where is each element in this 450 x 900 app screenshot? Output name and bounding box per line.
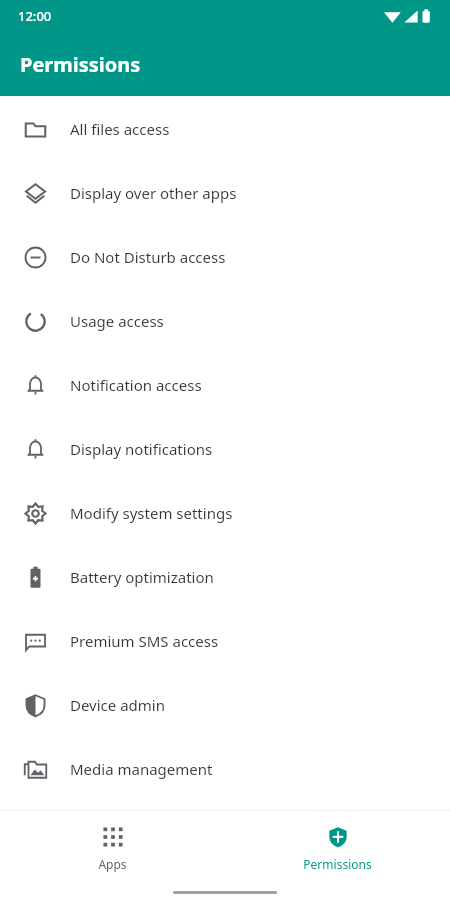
button[interactable]: Permissions	[225, 811, 450, 885]
button[interactable]: Premium SMS access	[0, 609, 450, 673]
button[interactable]: Display over other apps	[0, 161, 450, 225]
staticText: Display over other apps	[70, 183, 237, 203]
staticText: Premium SMS access	[70, 631, 219, 651]
staticText: Notification access	[70, 375, 202, 395]
staticText: Media management	[70, 759, 213, 779]
staticText: Modify system settings	[70, 503, 233, 523]
button[interactable]: Apps	[0, 811, 225, 885]
staticText: Battery optimization	[70, 567, 214, 587]
staticText: All files access	[70, 119, 170, 139]
staticText: Permissions	[303, 856, 372, 872]
staticText: Usage access	[70, 311, 164, 331]
button[interactable]: All files access	[0, 97, 450, 161]
button[interactable]: Modify system settings	[0, 481, 450, 545]
staticText: Do Not Disturb access	[70, 247, 226, 267]
staticText: Device admin	[70, 695, 165, 715]
button[interactable]: Usage access	[0, 289, 450, 353]
button[interactable]: Display notifications	[0, 417, 450, 481]
button[interactable]: Battery optimization	[0, 545, 450, 609]
staticText: 12:00	[18, 7, 52, 25]
staticText: Display notifications	[70, 439, 213, 459]
button[interactable]: Notification access	[0, 353, 450, 417]
staticText: Apps	[98, 856, 127, 872]
button[interactable]: Device admin	[0, 673, 450, 737]
button[interactable]: Media management	[0, 737, 450, 801]
button[interactable]: Do Not Disturb access	[0, 225, 450, 289]
staticText: Permissions	[20, 51, 141, 78]
